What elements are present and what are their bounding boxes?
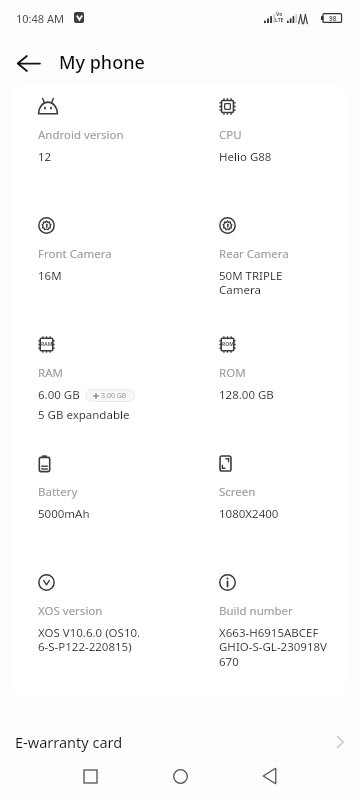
staticText: Battery xyxy=(38,484,78,500)
staticText: X663-H6915ABCEF GHIO-S-GL-230918V 670 xyxy=(219,625,327,670)
button[interactable]: E-warranty card xyxy=(0,718,360,766)
staticText: 6.00 GB xyxy=(38,387,80,403)
staticText: Screen xyxy=(219,484,256,500)
staticText: 12 xyxy=(38,149,52,165)
staticText: LTE xyxy=(275,17,284,24)
button[interactable]: Recents xyxy=(66,752,114,800)
staticText: Front Camera xyxy=(38,246,112,262)
staticText: 10:48 AM xyxy=(16,11,64,26)
staticText: 5 GB expandable xyxy=(38,407,130,423)
button[interactable]: Back xyxy=(8,43,48,83)
staticText: 98 xyxy=(329,14,337,23)
staticText: 3.00 GB xyxy=(101,391,127,401)
staticText: 16M xyxy=(38,268,62,284)
staticText: 50M TRIPLE Camera xyxy=(219,268,283,298)
button[interactable]: Back xyxy=(245,752,293,800)
staticText: Rear Camera xyxy=(219,246,289,262)
staticText: RAM xyxy=(41,341,53,348)
staticText: My phone xyxy=(59,50,145,75)
staticText: Android version xyxy=(38,127,124,143)
staticText: XOS version xyxy=(38,603,103,619)
staticText: 1080X2400 xyxy=(219,506,279,522)
staticText: 5000mAh xyxy=(38,506,90,522)
staticText: E-warranty card xyxy=(15,732,123,752)
staticText: CPU xyxy=(219,127,242,143)
button[interactable]: Home xyxy=(156,752,204,800)
staticText: RAM xyxy=(38,365,63,381)
staticText: XOS V10.6.0 (OS10. 6-S-P122-220815) xyxy=(38,625,141,655)
staticText: 128.00 GB xyxy=(219,387,274,403)
staticText: Build number xyxy=(219,603,293,619)
staticText: ROM xyxy=(219,365,246,381)
staticText: Vo xyxy=(276,11,283,18)
staticText: Helio G88 xyxy=(219,149,272,165)
staticText: ROM xyxy=(222,341,234,348)
